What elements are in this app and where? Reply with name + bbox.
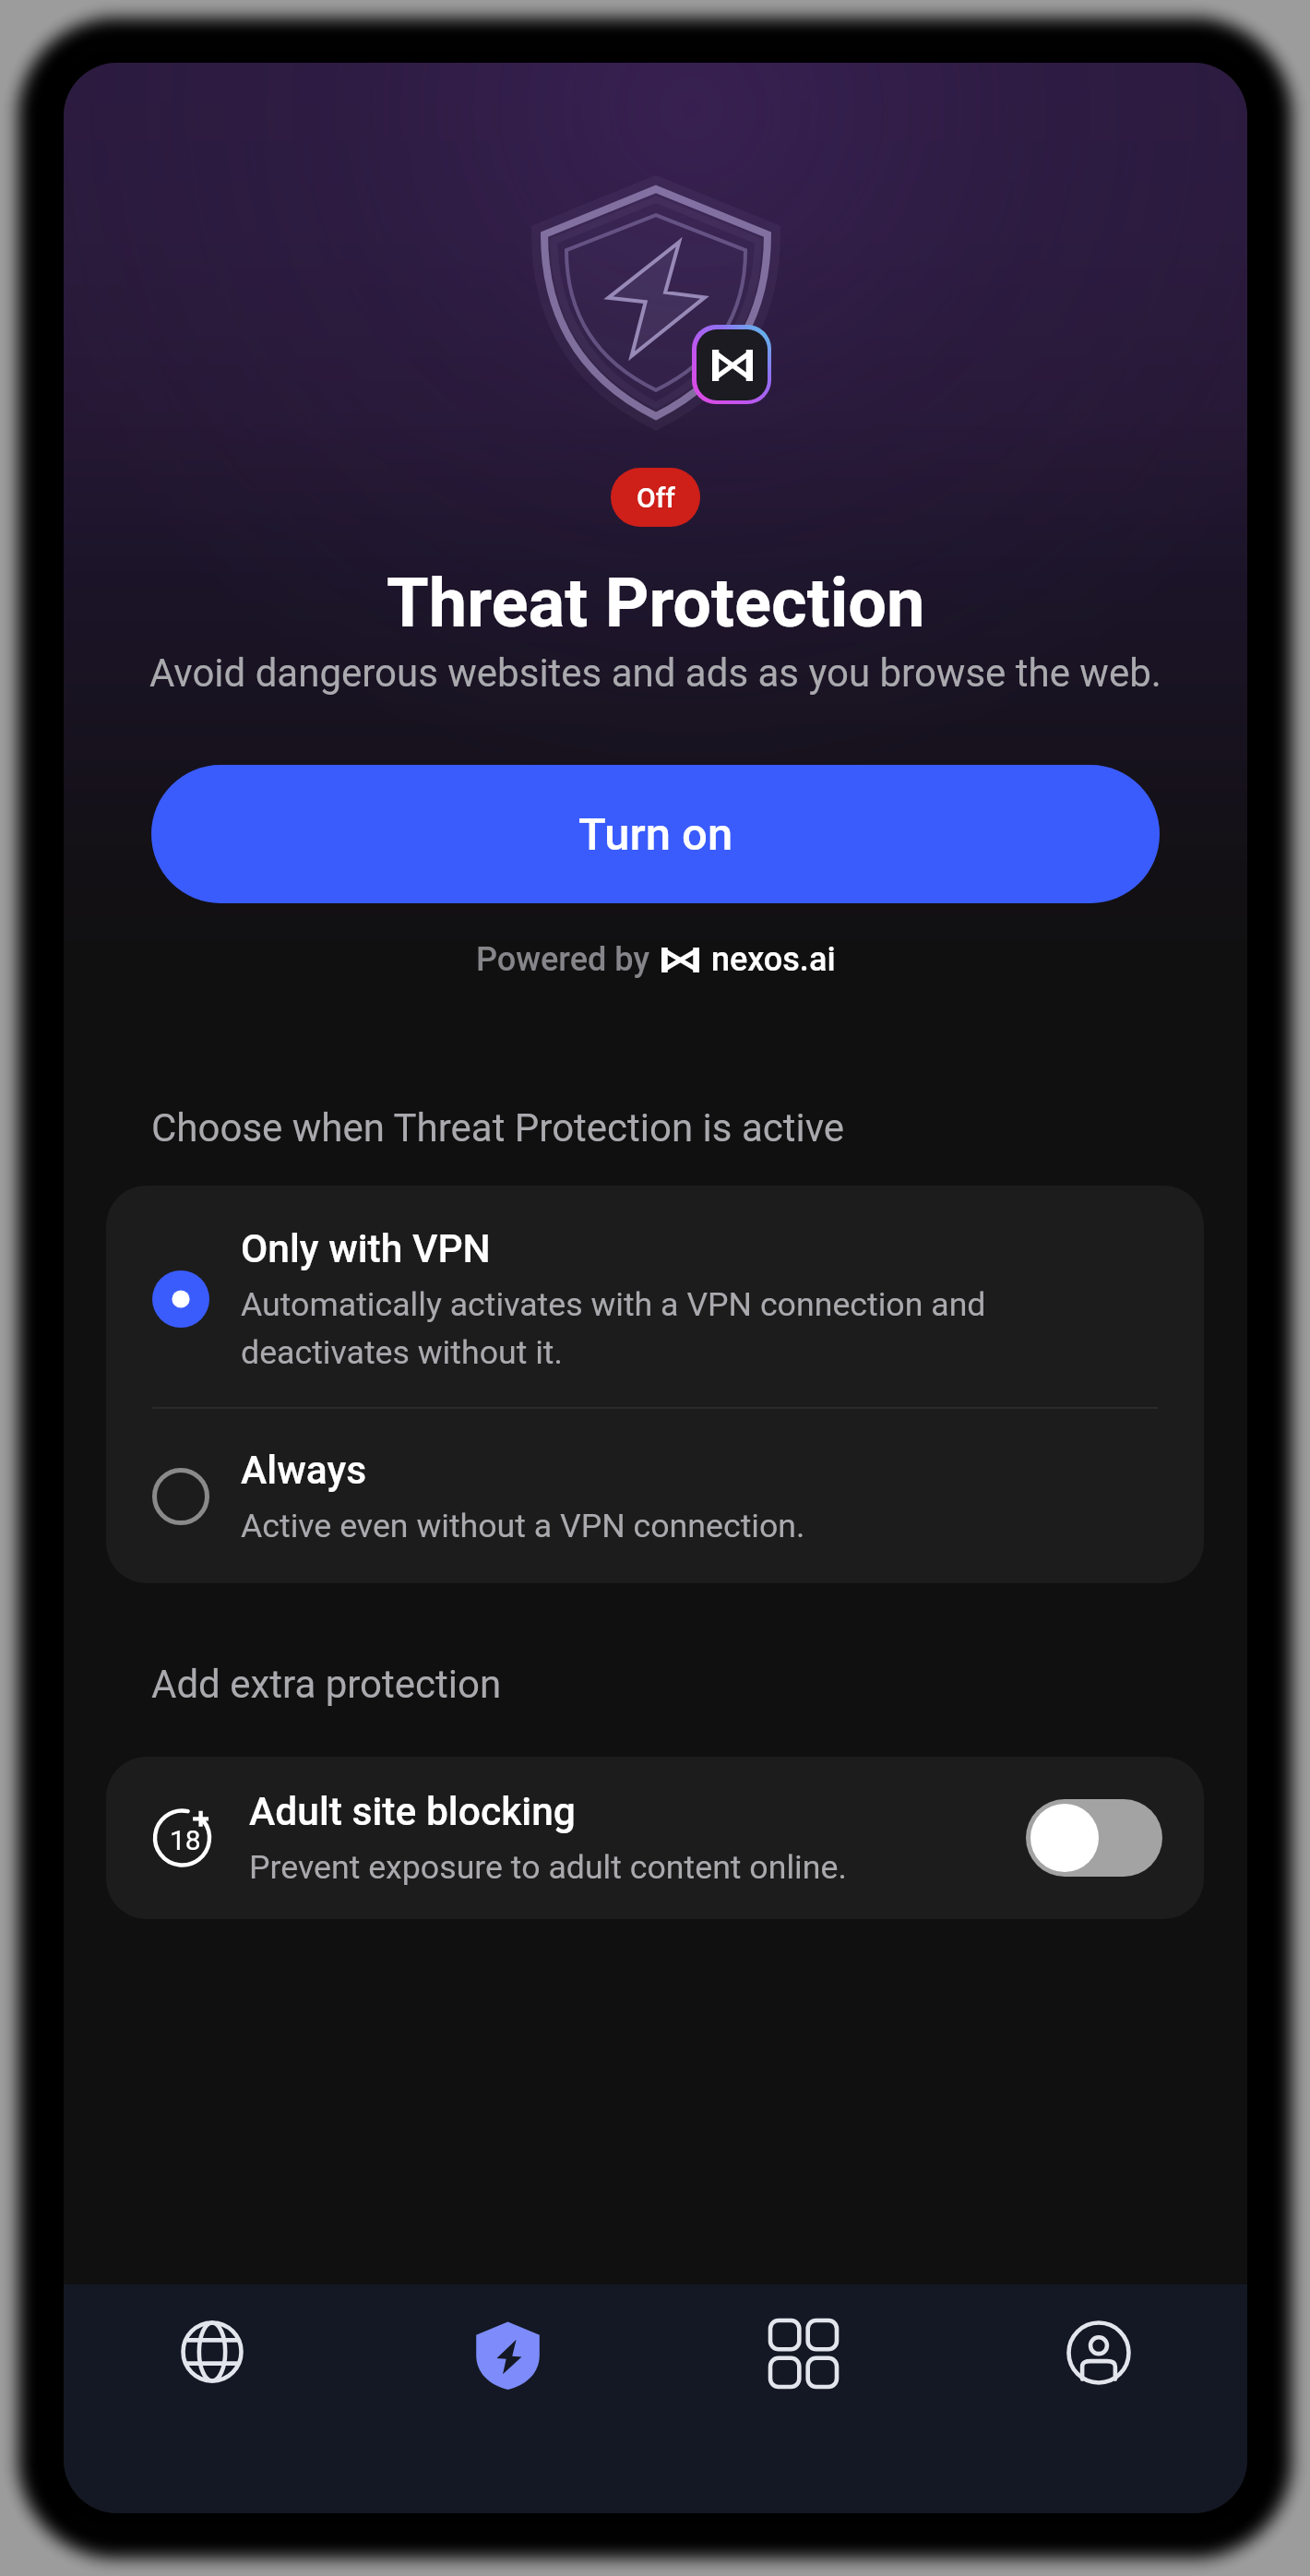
button[interactable]: Browse [65,2284,360,2513]
button[interactable]: Profile [951,2284,1246,2513]
staticText: Always [241,1448,367,1494]
button[interactable]: Threat Protection [360,2284,655,2513]
button[interactable]: 18 [106,1757,1204,1919]
staticText: Active even without a VPN connection. [241,1507,805,1545]
staticText: Powered by [476,940,649,979]
button[interactable]: Turn on [151,765,1160,903]
staticText: Adult site blocking [249,1789,576,1835]
staticText: Add extra protection [151,1662,502,1707]
staticText: 18 [170,1824,201,1856]
staticText: Avoid dangerous websites and ads as you … [149,650,1161,696]
staticText: Turn on [578,808,733,861]
staticText: Choose when Threat Protection is active [151,1105,845,1151]
staticText: Threat Protection [387,563,925,643]
staticText: Automatically activates with a VPN conne… [241,1285,1158,1372]
button[interactable]: Always [106,1409,1204,1583]
button[interactable]: Off [611,468,700,527]
button[interactable]: Adult site blocking toggle [1026,1799,1162,1877]
staticText: Prevent exposure to adult content online… [249,1848,847,1887]
staticText: Only with VPN [241,1226,491,1272]
button[interactable]: Only with VPN [106,1186,1204,1407]
button[interactable]: Apps [656,2284,951,2513]
staticText: nexos.ai [711,940,836,979]
staticText: Off [637,482,675,514]
